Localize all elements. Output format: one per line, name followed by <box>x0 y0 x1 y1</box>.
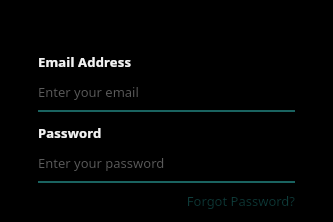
button[interactable]: Enter your email <box>38 83 295 101</box>
button[interactable]: Forgot Password? <box>186 192 295 210</box>
staticText: Enter your email <box>38 83 139 101</box>
staticText: Email Address <box>38 53 132 71</box>
staticText: Password <box>38 124 102 142</box>
staticText: Forgot Password? <box>186 192 295 210</box>
button[interactable]: Enter your password <box>38 154 295 172</box>
staticText: Enter your password <box>38 154 165 172</box>
